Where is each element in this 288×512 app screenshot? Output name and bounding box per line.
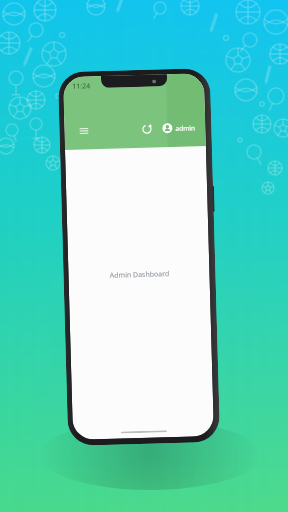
button[interactable]: admin	[160, 119, 198, 136]
button[interactable]: Open navigation menu	[73, 120, 94, 141]
button[interactable]: Refresh	[136, 118, 157, 139]
staticText: 11:24	[72, 81, 90, 92]
staticText: Admin Dashboard	[109, 269, 170, 281]
staticText: admin	[175, 123, 195, 133]
